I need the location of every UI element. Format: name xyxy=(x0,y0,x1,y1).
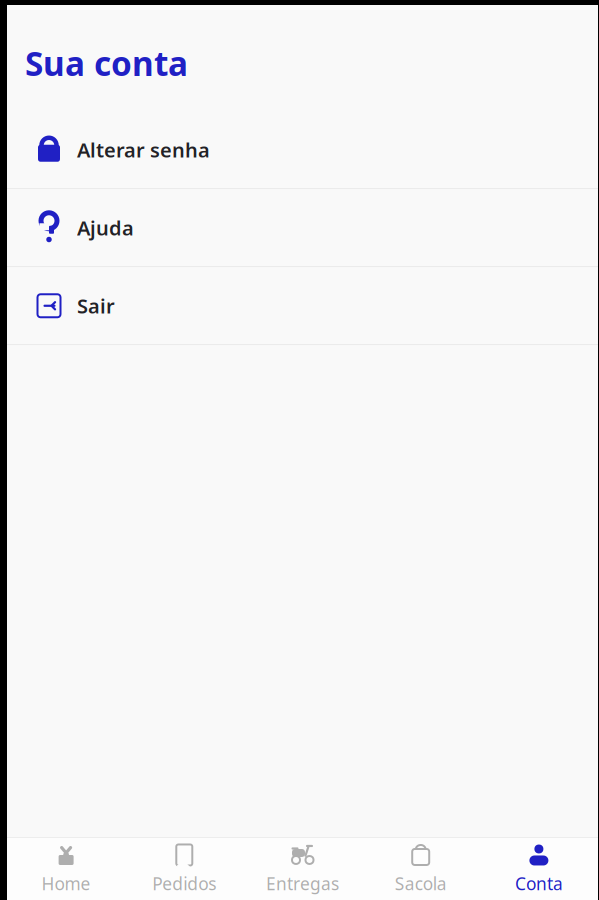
staticText: Conta xyxy=(515,872,563,895)
button[interactable]: Home xyxy=(7,838,125,900)
button[interactable]: Sair xyxy=(7,267,598,344)
button[interactable]: Entregas xyxy=(243,838,362,900)
button[interactable]: Pedidos xyxy=(125,838,243,900)
button[interactable]: Ajuda xyxy=(7,189,598,266)
staticText: Ajuda xyxy=(77,214,134,241)
button[interactable]: Sacola xyxy=(362,838,480,900)
button[interactable]: Conta xyxy=(480,838,598,900)
staticText: Sacola xyxy=(395,872,447,895)
button[interactable]: Alterar senha xyxy=(7,111,598,188)
staticText: Alterar senha xyxy=(77,136,210,163)
staticText: Pedidos xyxy=(152,872,216,895)
staticText: Home xyxy=(42,872,91,895)
staticText: Entregas xyxy=(266,872,339,895)
staticText: Sua conta xyxy=(25,41,188,85)
staticText: Sair xyxy=(77,292,115,319)
